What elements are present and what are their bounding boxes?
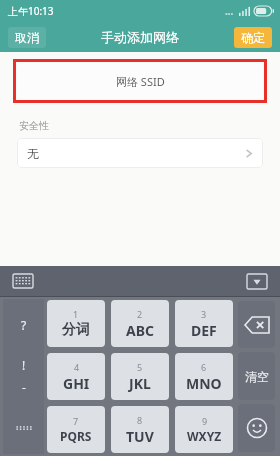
staticText: 9 [202, 415, 208, 427]
button[interactable]: ? [3, 299, 44, 350]
staticText: 1 [73, 308, 79, 320]
button[interactable]: 网络 SSID [17, 63, 263, 99]
button[interactable]: Symbols [3, 402, 44, 454]
staticText: 8 [137, 414, 143, 426]
staticText: GHI [63, 374, 90, 393]
button[interactable]: Emoji [238, 404, 275, 452]
staticText: ABC [126, 321, 154, 340]
button[interactable]: 7 [47, 406, 105, 453]
staticText: 6 [201, 361, 207, 373]
button[interactable]: 6 [175, 353, 233, 400]
button[interactable]: 清空 [238, 352, 275, 400]
staticText: WXYZ [187, 428, 222, 444]
button[interactable]: 9 [175, 406, 233, 453]
staticText: JKL [129, 374, 151, 393]
button[interactable]: 4 [47, 353, 105, 400]
button[interactable]: 2 [111, 300, 169, 347]
button[interactable]: 无 [17, 138, 263, 168]
staticText: DEF [191, 321, 217, 340]
staticText: 取消 [15, 30, 39, 45]
staticText: 清空 [245, 369, 269, 384]
button[interactable]: 1 [47, 300, 105, 347]
staticText: 3 [201, 308, 207, 320]
staticText: 网络 SSID [116, 74, 165, 89]
button[interactable]: 确定 [234, 27, 272, 48]
button[interactable]: Hide keyboard [247, 274, 267, 289]
staticText: ? [21, 317, 27, 333]
staticText: 7 [73, 415, 79, 427]
button[interactable]: 8 [111, 406, 169, 453]
staticText: 2 [137, 308, 143, 320]
button[interactable]: 5 [111, 353, 169, 400]
staticText: 安全性 [19, 119, 49, 132]
staticText: ... [225, 4, 234, 18]
staticText: 上午10:13 [8, 4, 54, 18]
staticText: MNO [186, 374, 222, 393]
button[interactable]: Switch keyboard [13, 274, 33, 288]
staticText: 无 [27, 146, 39, 161]
staticText: 5 [137, 361, 143, 373]
button[interactable]: ! [3, 350, 44, 402]
staticText: ! [22, 357, 26, 373]
staticText: 确定 [241, 30, 265, 45]
staticText: 手动添加网络 [101, 29, 179, 45]
staticText: TUV [126, 427, 154, 446]
staticText: PQRS [60, 428, 92, 444]
button[interactable]: Backspace [238, 301, 275, 348]
button[interactable]: 3 [175, 300, 233, 347]
button[interactable]: 取消 [8, 27, 46, 48]
staticText: 分词 [62, 321, 90, 339]
staticText: - [22, 379, 26, 395]
staticText: 4 [74, 361, 80, 373]
